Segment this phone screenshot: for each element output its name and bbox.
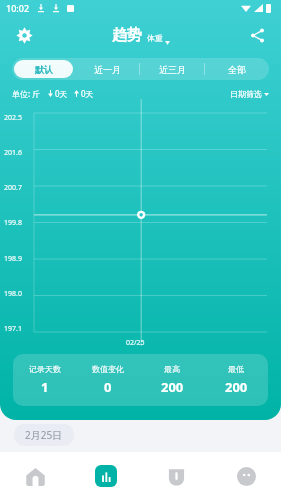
button[interactable]: 近三月 bbox=[140, 58, 204, 80]
staticText: 单位: 斤 bbox=[12, 88, 41, 99]
staticText: 1 bbox=[41, 378, 49, 396]
staticText: 趋势 bbox=[112, 26, 142, 45]
button[interactable]: 2月25日 bbox=[14, 424, 74, 446]
button[interactable]: 近一月 bbox=[75, 58, 139, 80]
button[interactable]: 默认 bbox=[14, 60, 73, 78]
staticText: 近一月 bbox=[94, 64, 121, 75]
staticText: 2月25日 bbox=[25, 428, 63, 442]
staticText: 198.9 bbox=[4, 254, 22, 262]
staticText: 200 bbox=[225, 378, 248, 396]
button[interactable]: Settings bbox=[10, 21, 38, 49]
staticText: 0 bbox=[104, 378, 112, 396]
staticText: 200 bbox=[161, 378, 184, 396]
staticText: 默认 bbox=[35, 64, 53, 75]
staticText: 近三月 bbox=[159, 64, 186, 75]
button[interactable]: 全部 bbox=[205, 58, 269, 80]
staticText: 0天 bbox=[81, 88, 94, 99]
button[interactable]: Home bbox=[0, 452, 71, 500]
staticText: 最高 bbox=[164, 364, 180, 374]
staticText: 0天 bbox=[55, 88, 68, 99]
button[interactable]: 记录天数 bbox=[13, 354, 268, 406]
staticText: 日期筛选 bbox=[230, 89, 262, 99]
staticText: 全部 bbox=[228, 64, 246, 75]
button[interactable]: 日期筛选 bbox=[230, 89, 269, 99]
button[interactable]: Trends bbox=[71, 452, 141, 500]
staticText: 197.1 bbox=[4, 324, 22, 332]
staticText: 199.8 bbox=[4, 218, 22, 226]
staticText: 198.0 bbox=[4, 289, 22, 297]
staticText: 记录天数 bbox=[29, 364, 61, 374]
button[interactable]: 趋势 bbox=[112, 26, 170, 45]
staticText: 202.5 bbox=[4, 113, 22, 121]
staticText: 201.6 bbox=[4, 148, 22, 156]
staticText: 数值变化 bbox=[92, 364, 124, 374]
staticText: 10:02 bbox=[6, 2, 30, 14]
button[interactable]: Device bbox=[141, 452, 211, 500]
button[interactable]: Profile bbox=[211, 452, 281, 500]
staticText: 体重 bbox=[147, 33, 163, 43]
staticText: 200.7 bbox=[4, 183, 22, 191]
staticText: 02/25 bbox=[126, 338, 145, 348]
staticText: 最低 bbox=[228, 364, 244, 374]
button[interactable]: Share bbox=[243, 21, 271, 49]
